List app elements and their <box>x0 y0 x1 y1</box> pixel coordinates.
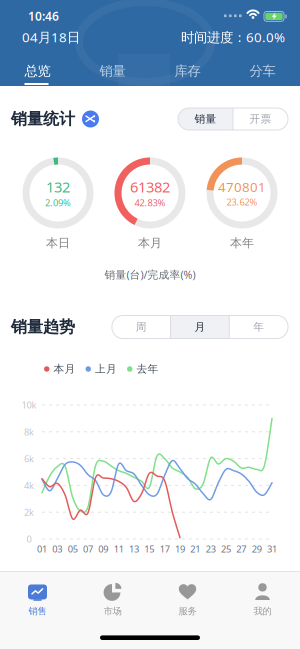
staticText: 25 <box>221 543 231 555</box>
button[interactable]: 销量 <box>178 108 233 130</box>
staticText: 年 <box>253 320 264 333</box>
button[interactable]: 库存 <box>150 56 225 86</box>
staticText: 15 <box>144 543 154 555</box>
staticText: 07 <box>83 543 93 555</box>
staticText: 23.62% <box>226 196 257 208</box>
staticText: 19 <box>175 543 185 555</box>
staticText: 周 <box>136 320 147 333</box>
staticText: 开票 <box>249 112 271 125</box>
staticText: 服务 <box>178 605 196 617</box>
staticText: 本月 <box>53 362 75 375</box>
button[interactable]: 切换 <box>82 110 99 127</box>
button[interactable]: 年 <box>229 315 288 338</box>
staticText: 销量(台)/完成率(%) <box>104 267 195 282</box>
staticText: 29 <box>252 543 262 555</box>
staticText: 本年 <box>230 236 254 250</box>
staticText: 8k <box>24 426 34 438</box>
staticText: 我的 <box>253 605 271 617</box>
staticText: 27 <box>236 543 246 555</box>
staticText: 13 <box>129 543 139 555</box>
staticText: 库存 <box>174 63 200 79</box>
staticText: 去年 <box>136 362 158 375</box>
staticText: 上月 <box>95 362 117 375</box>
staticText: 132 <box>46 177 70 197</box>
staticText: 0 <box>26 533 31 545</box>
button[interactable]: 总览 <box>0 56 75 86</box>
staticText: 10:46 <box>28 8 59 24</box>
button[interactable]: 月 <box>171 315 229 338</box>
staticText: 03 <box>52 543 62 555</box>
staticText: 11 <box>114 543 124 555</box>
staticText: 销量 <box>194 112 216 125</box>
staticText: 销售 <box>28 605 46 617</box>
staticText: 17 <box>160 543 170 555</box>
staticText: 23 <box>206 543 216 555</box>
staticText: 时间进度：60.0% <box>181 28 285 46</box>
staticText: 04月18日 <box>22 28 80 46</box>
button[interactable]: 我的 <box>225 579 300 621</box>
staticText: 05 <box>68 543 78 555</box>
staticText: 2k <box>24 506 34 518</box>
staticText: 09 <box>98 543 108 555</box>
button[interactable]: 开票 <box>233 108 288 130</box>
button[interactable]: 销售 <box>0 579 75 621</box>
staticText: 销量统计 <box>11 109 75 129</box>
staticText: 6k <box>24 452 34 465</box>
staticText: 本月 <box>138 236 162 250</box>
staticText: 销量趋势 <box>11 317 75 337</box>
staticText: 分车 <box>249 63 275 79</box>
staticText: 2.09% <box>45 196 71 209</box>
staticText: 01 <box>37 543 47 555</box>
button[interactable]: 市场 <box>75 579 150 621</box>
staticText: 市场 <box>103 605 121 617</box>
button[interactable]: 服务 <box>150 579 225 621</box>
staticText: 470801 <box>218 178 266 196</box>
staticText: 月 <box>194 320 205 333</box>
staticText: 4k <box>24 479 34 492</box>
button[interactable]: 周 <box>112 315 171 338</box>
staticText: 31 <box>267 543 277 555</box>
staticText: 10k <box>21 399 36 411</box>
staticText: 销量 <box>99 63 125 79</box>
staticText: 21 <box>190 543 200 555</box>
button[interactable]: 销量 <box>75 56 150 86</box>
button[interactable]: 分车 <box>225 56 300 86</box>
staticText: 42.83% <box>134 196 165 209</box>
staticText: 总览 <box>24 63 50 79</box>
staticText: 61382 <box>130 177 170 197</box>
staticText: 本日 <box>46 236 70 250</box>
